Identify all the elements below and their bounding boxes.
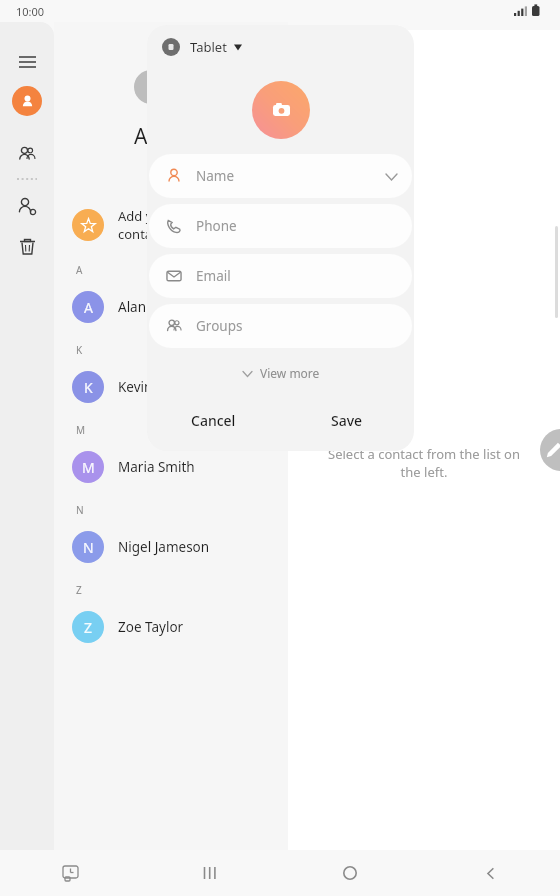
staticText: Email xyxy=(196,267,231,285)
staticText: Add your xyxy=(118,207,174,225)
button[interactable]: Contacts xyxy=(12,86,42,116)
button[interactable]: Menu xyxy=(7,42,47,82)
staticText: Alan Cooper xyxy=(118,298,196,316)
button[interactable]: Home xyxy=(280,850,420,896)
staticText: N xyxy=(83,538,94,557)
staticText: Tablet xyxy=(190,38,227,56)
button[interactable]: Z xyxy=(54,603,288,651)
staticText: contact xyxy=(118,225,164,243)
staticText: Phone xyxy=(196,217,237,235)
button[interactable]: View more xyxy=(147,360,414,386)
button[interactable]: Groups xyxy=(9,136,45,172)
button[interactable]: A xyxy=(54,283,288,331)
button[interactable]: Cancel xyxy=(147,389,280,451)
staticText: Z xyxy=(76,583,82,597)
staticText: Nigel Jameson xyxy=(118,538,210,556)
staticText: Select a contact from the list on the le… xyxy=(328,445,520,481)
staticText: 10:00 xyxy=(16,4,45,19)
button[interactable]: Email xyxy=(149,254,412,298)
staticText: A xyxy=(76,263,83,277)
button[interactable]: Manage contacts xyxy=(9,188,45,224)
staticText: Maria Smith xyxy=(118,458,195,476)
staticText: Save xyxy=(331,411,363,430)
button[interactable]: M xyxy=(54,443,288,491)
button[interactable]: Phone xyxy=(149,204,412,248)
button[interactable]: Add your xyxy=(54,199,288,251)
staticText: K xyxy=(84,378,93,397)
button[interactable]: Screenshot xyxy=(0,850,140,896)
staticText: N xyxy=(76,503,84,517)
button[interactable]: Name xyxy=(149,154,412,198)
button[interactable]: Save xyxy=(280,389,414,451)
button[interactable]: Recents xyxy=(140,850,280,896)
staticText: All contacts xyxy=(134,122,247,151)
button[interactable]: N xyxy=(54,523,288,571)
button[interactable]: Tablet xyxy=(147,25,414,69)
staticText: M xyxy=(76,423,86,437)
staticText: K xyxy=(76,343,83,357)
button[interactable]: Add photo xyxy=(252,81,310,139)
button[interactable]: K xyxy=(54,363,288,411)
staticText: Cancel xyxy=(191,411,236,430)
staticText: View more xyxy=(260,365,320,381)
staticText: Groups xyxy=(196,317,243,335)
staticText: M xyxy=(82,458,95,477)
button[interactable]: Back xyxy=(420,850,560,896)
staticText: A xyxy=(84,298,93,317)
staticText: Z xyxy=(84,618,93,637)
staticText: Kevin Reed xyxy=(118,378,188,396)
button[interactable]: Edit xyxy=(540,429,560,471)
staticText: Name xyxy=(196,167,235,185)
button[interactable]: Groups xyxy=(149,304,412,348)
staticText: Zoe Taylor xyxy=(118,618,184,636)
button[interactable]: Trash xyxy=(9,228,45,264)
button[interactable]: Search xyxy=(134,70,168,104)
